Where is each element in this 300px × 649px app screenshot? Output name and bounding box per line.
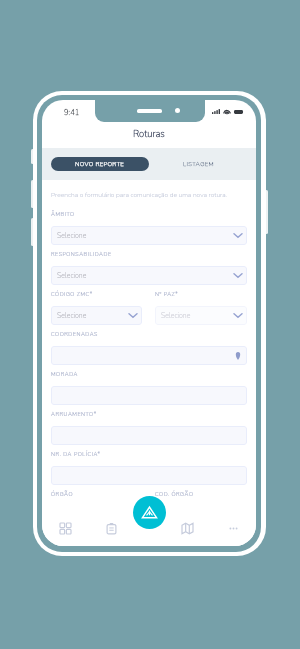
staticText: Roturas — [133, 127, 165, 140]
button[interactable]: Selecione — [51, 226, 247, 245]
staticText: Selecione — [161, 311, 191, 321]
staticText: ÂMBITO — [51, 211, 75, 218]
staticText: COORDENADAS — [51, 331, 98, 338]
button[interactable] — [51, 466, 247, 485]
button[interactable]: Novo reporte — [133, 496, 166, 529]
staticText: ARRUAMENTO* — [51, 411, 97, 418]
staticText: COD. ÓRGÃO — [155, 491, 194, 498]
staticText: CÓDIGO ZMC* — [51, 291, 93, 298]
staticText: MORADA — [51, 371, 78, 378]
staticText: NOVO REPORTE — [75, 160, 125, 168]
button[interactable]: Selecione — [155, 306, 247, 325]
button[interactable]: Map — [164, 512, 210, 544]
staticText: Preencha o formulário para comunicação d… — [51, 190, 228, 199]
button[interactable] — [51, 386, 247, 405]
button[interactable] — [51, 426, 247, 445]
staticText: NR. DA POLÍCIA* — [51, 451, 101, 458]
staticText: Selecione — [57, 231, 87, 241]
button[interactable]: LISTAGEM — [149, 157, 247, 171]
staticText: LISTAGEM — [183, 160, 214, 168]
button[interactable]: Selecione — [51, 306, 142, 325]
staticText: Selecione — [57, 311, 87, 321]
button[interactable]: Dashboard — [42, 512, 88, 544]
button[interactable]: Reports — [88, 512, 134, 544]
button[interactable]: Selecione — [51, 266, 247, 285]
staticText: Selecione — [57, 271, 87, 281]
button[interactable]: NOVO REPORTE — [51, 157, 149, 171]
button[interactable]: More — [210, 512, 256, 544]
staticText: 9:41 — [64, 107, 80, 117]
staticText: RESPONSABILIDADE — [51, 251, 112, 258]
staticText: Nº PAZ* — [155, 291, 179, 298]
staticText: ÓRGÃO — [51, 491, 74, 498]
button[interactable] — [51, 346, 247, 365]
